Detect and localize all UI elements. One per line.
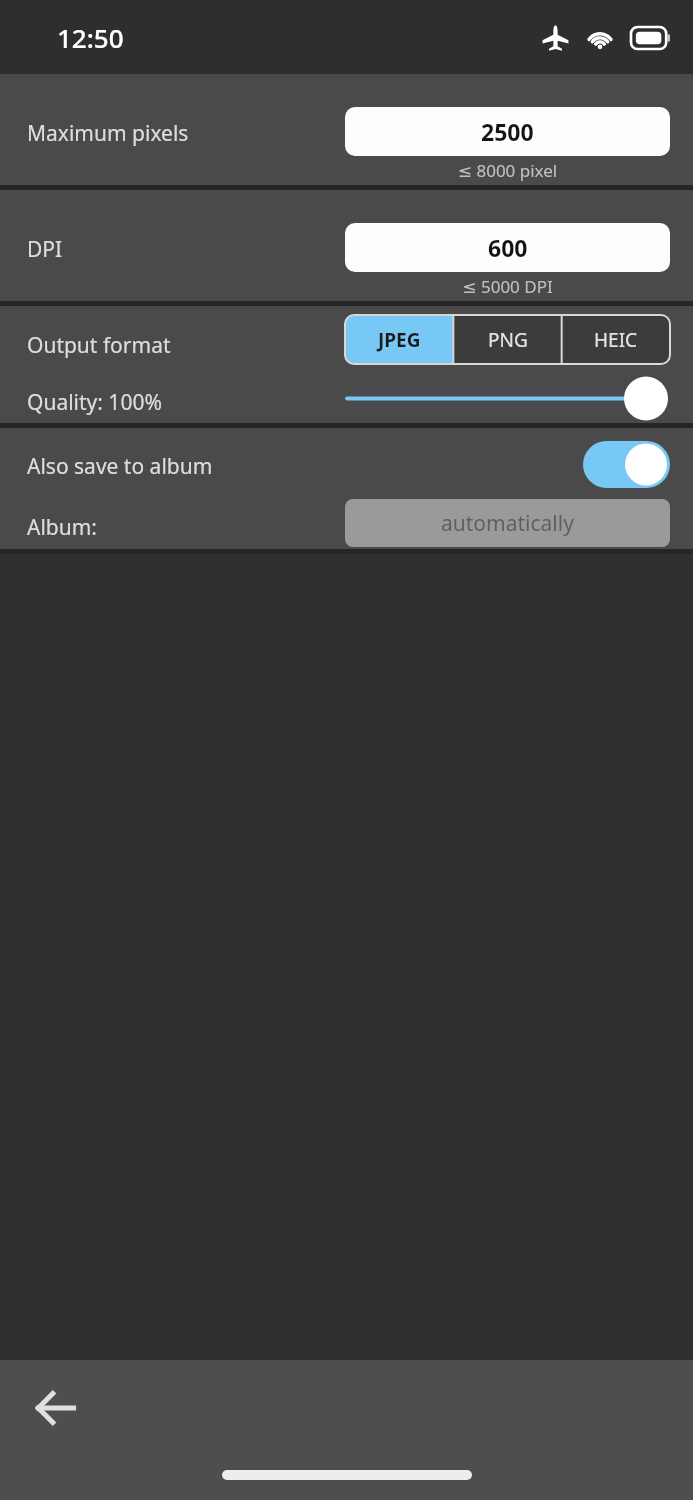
staticText: ≤ 8000 pixel (345, 159, 670, 182)
button[interactable]: Also save to album toggle (583, 441, 670, 488)
staticText: 600 (488, 232, 528, 263)
button[interactable] (345, 374, 670, 423)
button[interactable]: JPEG (345, 315, 454, 364)
button[interactable]: Back (20, 1372, 92, 1444)
staticText: Album: (27, 513, 97, 542)
staticText: PNG (488, 327, 528, 353)
staticText: 12:50 (57, 20, 124, 55)
staticText: Output format (27, 331, 171, 360)
staticText: JPEG (378, 327, 421, 353)
staticText: Also save to album (27, 452, 213, 481)
staticText: Maximum pixels (27, 119, 189, 148)
staticText: DPI (27, 235, 63, 264)
staticText: Quality: 100% (27, 388, 162, 417)
staticText: HEIC (594, 327, 638, 353)
button[interactable]: 600 (345, 223, 670, 272)
staticText: automatically (441, 509, 574, 538)
button[interactable]: 2500 (345, 107, 670, 156)
button[interactable]: PNG (454, 315, 562, 364)
staticText: 2500 (481, 116, 534, 147)
button[interactable]: HEIC (562, 315, 670, 364)
staticText: ≤ 5000 DPI (345, 275, 670, 298)
button[interactable]: automatically (345, 499, 670, 547)
